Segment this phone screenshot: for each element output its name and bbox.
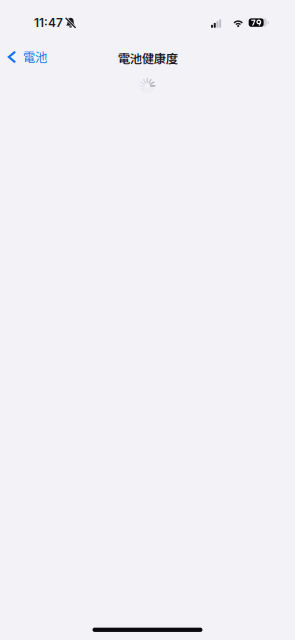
staticText: 電池 [23,48,47,66]
staticText: 11:47 [34,16,63,30]
button[interactable]: 電池 [0,42,55,72]
staticText: 電池健康度 [118,49,178,67]
